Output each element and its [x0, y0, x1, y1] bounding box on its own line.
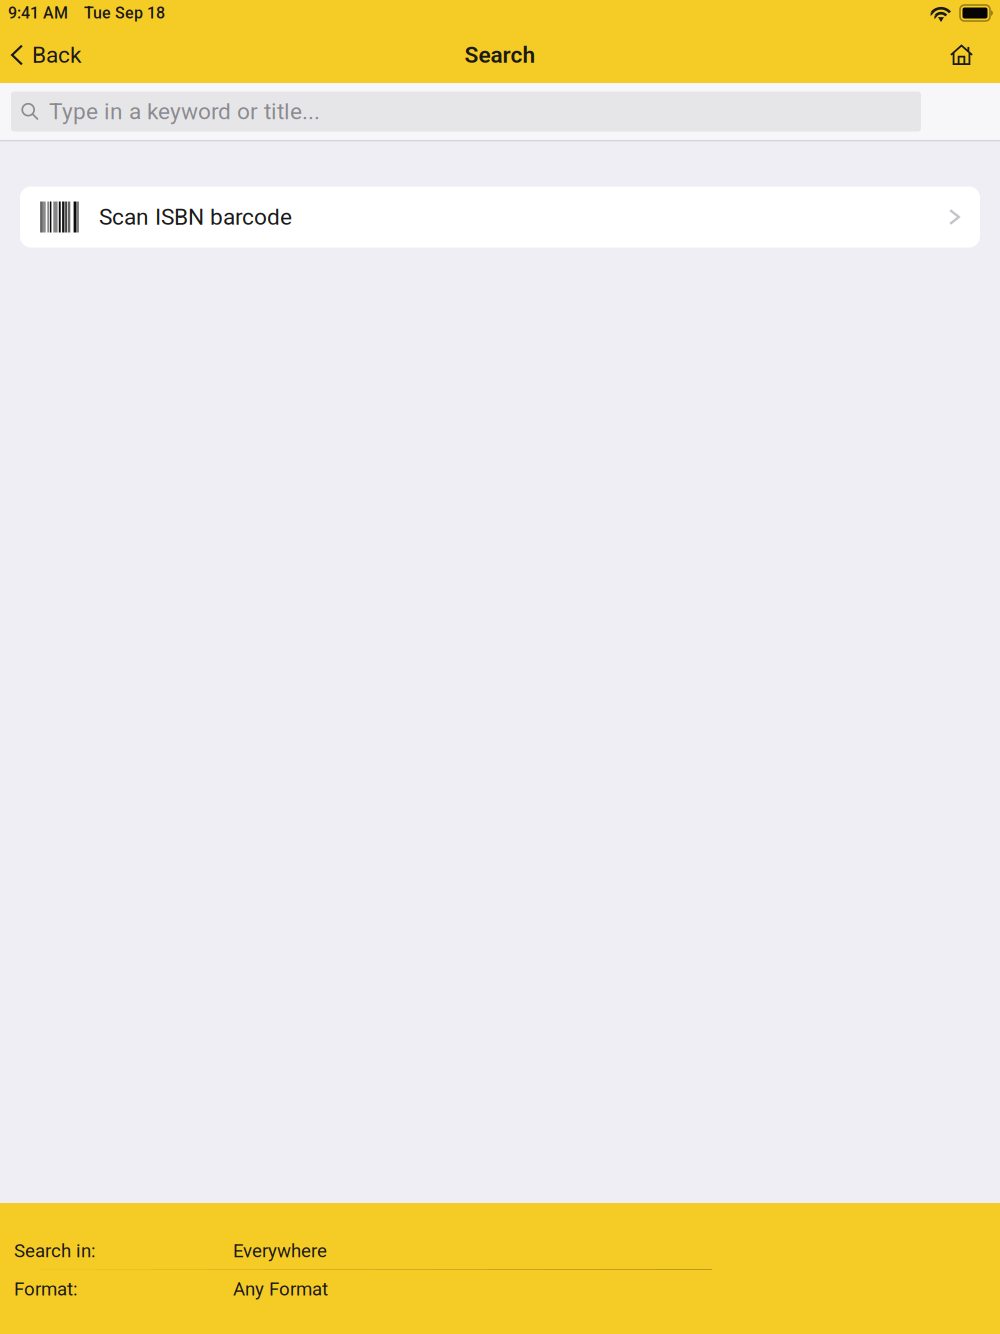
staticText: Tue Sep 18: [84, 4, 165, 22]
button[interactable]: Home: [932, 30, 1000, 83]
staticText: Search: [464, 42, 535, 68]
button[interactable]: Search in:: [0, 1203, 1000, 1269]
staticText: Scan ISBN barcode: [99, 204, 292, 230]
staticText: Any Format: [233, 1278, 328, 1300]
button[interactable]: Scan ISBN barcode: [20, 186, 980, 247]
button[interactable]: Format:: [0, 1270, 1000, 1308]
staticText: Back: [32, 42, 81, 68]
button[interactable]: Back: [0, 30, 95, 83]
staticText: Type in a keyword or title...: [49, 98, 320, 125]
staticText: 9:41 AM: [8, 4, 68, 22]
staticText: Everywhere: [233, 1240, 327, 1262]
staticText: Search in:: [14, 1240, 96, 1262]
staticText: Format:: [14, 1278, 78, 1300]
button[interactable]: Type in a keyword or title...: [11, 91, 921, 131]
